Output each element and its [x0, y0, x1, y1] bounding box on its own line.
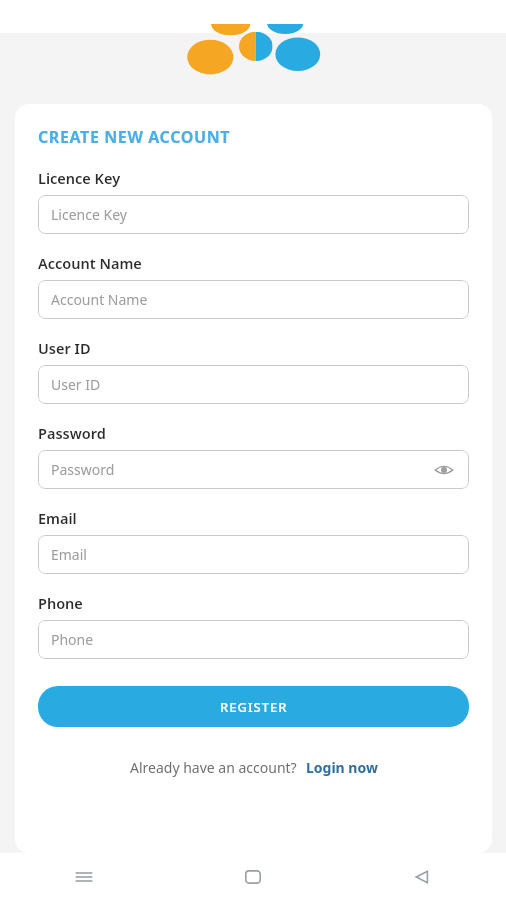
button[interactable]: Password [38, 450, 469, 489]
button[interactable]: Email [38, 535, 469, 574]
button[interactable]: Recents [0, 853, 168, 900]
staticText: Password [51, 460, 432, 479]
button[interactable]: Back [337, 853, 506, 900]
staticText: Licence Key [51, 205, 456, 224]
staticText: Already have an account? [130, 758, 297, 777]
staticText: Password [38, 423, 106, 443]
staticText: Account Name [51, 290, 456, 309]
button[interactable]: Licence Key [38, 195, 469, 234]
staticText: Phone [38, 593, 83, 613]
staticText: Licence Key [38, 168, 121, 188]
staticText: REGISTER [220, 698, 288, 716]
button[interactable]: Home [168, 853, 337, 900]
button[interactable]: Login now [306, 758, 378, 777]
button[interactable]: REGISTER [38, 686, 469, 727]
staticText: User ID [51, 375, 456, 394]
staticText: Email [51, 545, 456, 564]
staticText: Login now [306, 758, 378, 777]
button[interactable]: Account Name [38, 280, 469, 319]
staticText: Email [38, 508, 77, 528]
button[interactable]: Phone [38, 620, 469, 659]
button[interactable]: Show password [432, 458, 456, 482]
staticText: Account Name [38, 253, 142, 273]
staticText: CREATE NEW ACCOUNT [38, 126, 231, 148]
staticText: User ID [38, 338, 91, 358]
button[interactable]: User ID [38, 365, 469, 404]
staticText: Phone [51, 630, 456, 649]
